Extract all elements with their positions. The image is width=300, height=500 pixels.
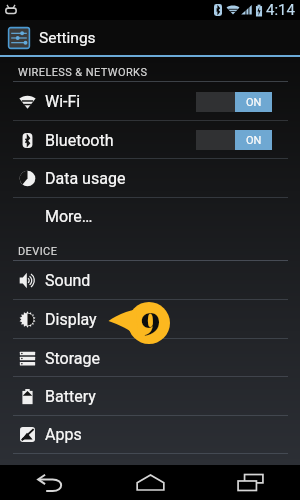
button[interactable]: More… [0, 197, 300, 236]
button[interactable]: Wi-Fi [0, 82, 300, 121]
staticText: Apps [45, 425, 82, 444]
staticText: WIRELESS & NETWORKS [18, 66, 148, 79]
staticText: Storage [45, 349, 100, 368]
button[interactable]: Data usage [0, 159, 300, 198]
button[interactable]: Back [0, 465, 100, 500]
staticText: DEVICE [18, 245, 58, 258]
staticText: More… [45, 207, 93, 226]
staticText: ON [246, 134, 262, 147]
button[interactable]: Battery [0, 377, 300, 416]
button[interactable]: ON [196, 130, 272, 150]
button[interactable]: Settings [0, 20, 300, 55]
staticText: SYSTEM [18, 463, 63, 476]
staticText: 9 [141, 295, 159, 339]
button[interactable]: Apps [0, 415, 300, 454]
staticText: Sound [45, 271, 91, 290]
button[interactable]: Sound [0, 261, 300, 300]
button[interactable]: Home [100, 465, 200, 500]
button[interactable]: Bluetooth [0, 121, 300, 159]
button[interactable]: Recent apps [200, 465, 300, 500]
staticText: Bluetooth [45, 131, 114, 150]
button[interactable]: Display [0, 299, 300, 339]
staticText: Display [45, 310, 97, 329]
button[interactable]: ON [196, 92, 272, 112]
staticText: Settings [39, 29, 96, 47]
staticText: Wi-Fi [45, 92, 81, 111]
staticText: Battery [45, 387, 96, 406]
staticText: Data usage [45, 169, 126, 188]
staticText: ON [246, 96, 262, 109]
button[interactable]: Storage [0, 339, 300, 377]
staticText: 4:14 [266, 1, 295, 19]
